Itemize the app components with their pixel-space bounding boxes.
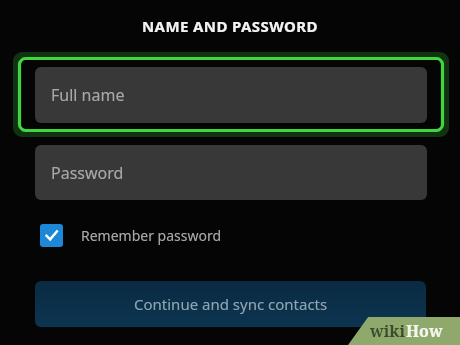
staticText: Remember password bbox=[81, 226, 222, 245]
button[interactable]: Remember password bbox=[35, 218, 222, 252]
staticText: Password bbox=[51, 162, 124, 184]
button[interactable]: Full name bbox=[35, 67, 427, 123]
staticText: wiki bbox=[370, 320, 406, 342]
button[interactable]: Password bbox=[35, 145, 427, 200]
staticText: Continue and sync contacts bbox=[134, 294, 328, 314]
button[interactable]: Continue and sync contacts bbox=[35, 281, 426, 327]
staticText: How bbox=[406, 320, 443, 342]
staticText: Full name bbox=[51, 84, 125, 106]
staticText: NAME AND PASSWORD bbox=[142, 16, 318, 36]
